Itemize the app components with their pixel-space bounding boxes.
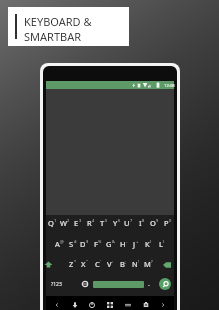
- staticText: F: [94, 239, 98, 249]
- staticText: Y: [113, 218, 118, 228]
- staticText: ): [163, 239, 165, 244]
- staticText: 12:08: [164, 83, 175, 89]
- button[interactable]: Shift: [42, 258, 55, 271]
- staticText: 8: [142, 218, 145, 223]
- staticText: .: [148, 279, 150, 289]
- staticText: 3: [79, 218, 82, 223]
- button[interactable]: E: [71, 214, 84, 232]
- button[interactable]: Power: [85, 296, 99, 310]
- button[interactable]: Y: [110, 214, 123, 232]
- button[interactable]: Emoji: [79, 278, 91, 290]
- button[interactable]: U: [122, 214, 135, 232]
- staticText: J: [133, 239, 136, 249]
- button[interactable]: M: [142, 255, 155, 273]
- button[interactable]: S: [66, 235, 79, 253]
- staticText: L: [159, 239, 163, 249]
- button[interactable]: ?123: [48, 278, 64, 290]
- button[interactable]: L: [155, 235, 168, 253]
- staticText: A: [55, 239, 60, 249]
- button[interactable]: Previous: [50, 296, 64, 310]
- button[interactable]: F: [91, 235, 104, 253]
- staticText: ': [100, 259, 101, 264]
- staticText: R: [87, 218, 92, 228]
- staticText: 5: [105, 218, 108, 223]
- staticText: #: [74, 239, 77, 244]
- button[interactable]: G: [104, 235, 117, 253]
- staticText: @: [60, 239, 64, 244]
- staticText: C: [95, 259, 100, 269]
- button[interactable]: J: [129, 235, 142, 253]
- staticText: 9: [156, 218, 159, 223]
- staticText: H: [120, 239, 126, 249]
- staticText: T: [100, 218, 105, 228]
- staticText: +: [136, 239, 139, 244]
- button[interactable]: O: [148, 214, 161, 232]
- staticText: X: [81, 259, 86, 269]
- button[interactable]: Hide keyboard: [68, 296, 82, 310]
- button[interactable]: Backspace: [160, 258, 173, 271]
- staticText: B: [120, 259, 125, 269]
- button[interactable]: Clipboard: [139, 296, 153, 310]
- staticText: M: [144, 259, 151, 269]
- staticText: S: [69, 239, 74, 249]
- staticText: %: [98, 239, 102, 244]
- staticText: V: [107, 259, 112, 269]
- staticText: D: [80, 239, 86, 249]
- button[interactable]: N: [129, 255, 142, 273]
- button[interactable]: V: [104, 255, 117, 273]
- staticText: 7: [130, 218, 133, 223]
- button[interactable]: Menu: [121, 296, 135, 310]
- staticText: $: [86, 239, 89, 244]
- staticText: E: [74, 218, 79, 228]
- button[interactable]: Next: [156, 296, 170, 310]
- staticText: KEYBOARD &: [24, 14, 92, 29]
- staticText: U: [124, 218, 130, 228]
- button[interactable]: W: [58, 214, 71, 232]
- button[interactable]: X: [78, 255, 91, 273]
- staticText: !: [138, 259, 140, 264]
- button[interactable]: T: [97, 214, 110, 232]
- staticText: K: [145, 239, 150, 249]
- button[interactable]: Z: [66, 255, 79, 273]
- staticText: 0: [169, 218, 172, 223]
- staticText: O: [150, 218, 156, 228]
- button[interactable]: H: [117, 235, 130, 253]
- button[interactable]: A: [53, 235, 66, 253]
- button[interactable]: P: [161, 214, 174, 232]
- staticText: P: [164, 218, 169, 228]
- staticText: SMARTBAR: [24, 29, 82, 44]
- staticText: ?: [151, 259, 153, 264]
- button[interactable]: Q: [46, 214, 59, 232]
- staticText: 2: [67, 218, 70, 223]
- staticText: 1: [54, 218, 57, 223]
- staticText: &: [112, 239, 115, 244]
- staticText: (: [150, 239, 152, 244]
- button[interactable]: .: [144, 278, 154, 290]
- staticText: W: [60, 218, 67, 228]
- staticText: 4: [92, 218, 95, 223]
- button[interactable]: Search: [159, 278, 171, 290]
- staticText: ;: [125, 259, 127, 264]
- staticText: ?123: [51, 281, 62, 288]
- button[interactable]: Space: [93, 281, 144, 288]
- staticText: 6: [118, 218, 121, 223]
- button[interactable]: I: [135, 214, 148, 232]
- button[interactable]: R: [84, 214, 97, 232]
- button[interactable]: K: [142, 235, 155, 253]
- staticText: *: [74, 259, 77, 264]
- button[interactable]: D: [78, 235, 91, 253]
- staticText: G: [106, 239, 112, 249]
- staticText: I: [139, 218, 142, 228]
- staticText: ": [86, 259, 88, 264]
- staticText: -: [126, 239, 128, 244]
- staticText: Z: [69, 259, 74, 269]
- button[interactable]: Apps: [103, 296, 117, 310]
- staticText: Q: [48, 218, 54, 228]
- button[interactable]: C: [91, 255, 104, 273]
- staticText: N: [132, 259, 138, 269]
- button[interactable]: B: [117, 255, 130, 273]
- staticText: :: [112, 259, 114, 264]
- button[interactable]: KEYBOARD &: [8, 7, 129, 46]
